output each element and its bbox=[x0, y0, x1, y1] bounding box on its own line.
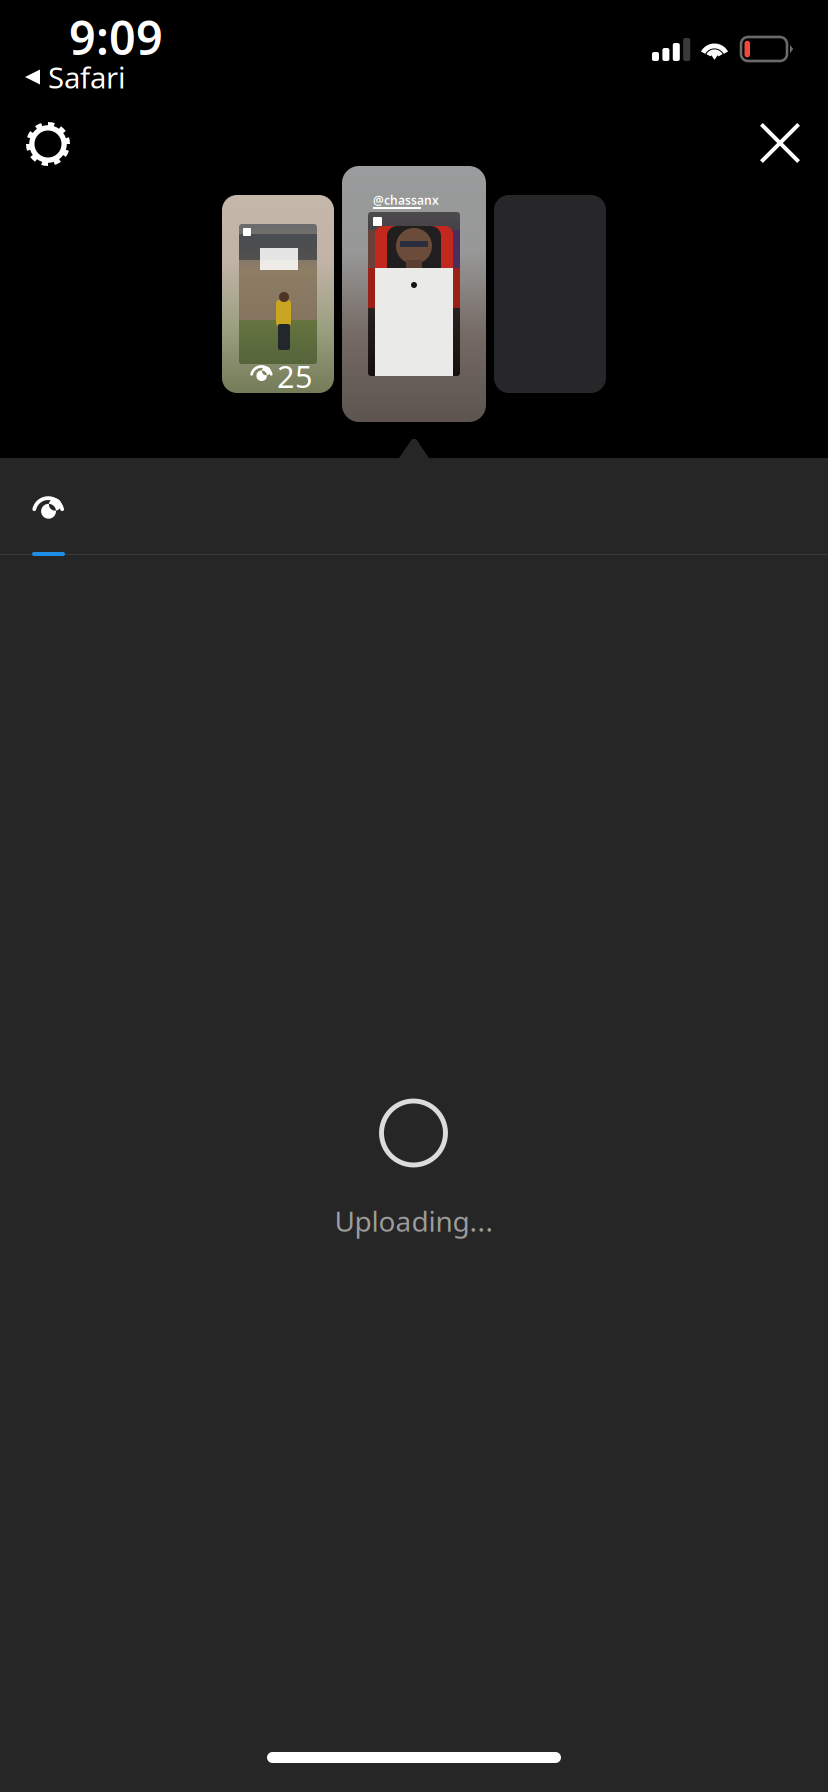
staticText: 9:09 bbox=[69, 6, 163, 68]
button[interactable]: 25 bbox=[222, 195, 334, 393]
button[interactable]: @chassanx bbox=[342, 166, 486, 422]
staticText: Uploading... bbox=[334, 1202, 493, 1240]
button[interactable]: Settings bbox=[8, 104, 88, 184]
button[interactable]: Views bbox=[0, 458, 96, 557]
button[interactable]: Close bbox=[742, 105, 818, 181]
staticText: 25 bbox=[277, 356, 313, 396]
button[interactable] bbox=[494, 195, 606, 393]
staticText: Safari bbox=[48, 57, 126, 96]
staticText: @chassanx bbox=[373, 192, 439, 208]
